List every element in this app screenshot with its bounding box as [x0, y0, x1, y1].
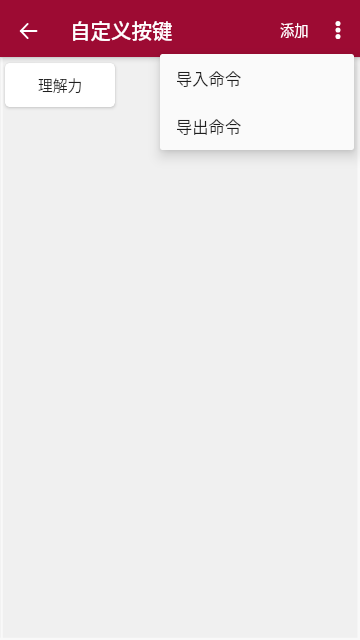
staticText: 导出命令 [176, 114, 242, 138]
staticText: 导入命令 [176, 66, 242, 90]
button[interactable]: 添加 [268, 0, 321, 57]
button[interactable]: 导入命令 [160, 54, 354, 102]
staticText: 理解力 [38, 74, 83, 95]
staticText: 自定义按键 [70, 15, 173, 45]
staticText: 添加 [280, 19, 309, 40]
button[interactable]: 理解力 [5, 63, 115, 107]
button[interactable]: More options [316, 0, 360, 57]
button[interactable]: Back [4, 0, 52, 57]
button[interactable]: 导出命令 [160, 102, 354, 150]
